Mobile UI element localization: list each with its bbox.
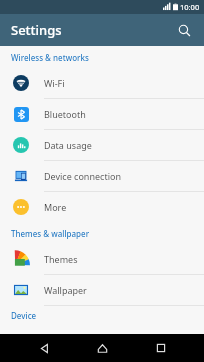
button[interactable]: Home — [87, 334, 117, 362]
staticText: Themes — [44, 253, 78, 265]
staticText: Device — [11, 310, 37, 320]
staticText: Wi-Fi — [44, 77, 65, 89]
staticText: Settings — [11, 21, 62, 39]
button[interactable]: Recent apps — [146, 334, 176, 362]
button[interactable]: Back — [29, 334, 59, 362]
button[interactable]: Search — [172, 18, 196, 42]
staticText: More — [44, 201, 67, 213]
staticText: Wallpaper — [44, 284, 87, 296]
button[interactable]: Wallpaper — [0, 275, 204, 305]
staticText: Bluetooth — [44, 108, 86, 120]
button[interactable]: Themes — [0, 244, 204, 274]
staticText: Data usage — [44, 139, 92, 151]
staticText: Wireless & networks — [11, 52, 89, 63]
button[interactable]: Data usage — [0, 130, 204, 160]
button[interactable]: More — [0, 192, 204, 222]
staticText: Device connection — [44, 170, 121, 182]
staticText: 10:00 — [180, 2, 200, 12]
staticText: Themes & wallpaper — [11, 228, 90, 239]
button[interactable]: Wi-Fi — [0, 68, 204, 98]
button[interactable]: Device connection — [0, 161, 204, 191]
button[interactable]: Bluetooth — [0, 99, 204, 129]
